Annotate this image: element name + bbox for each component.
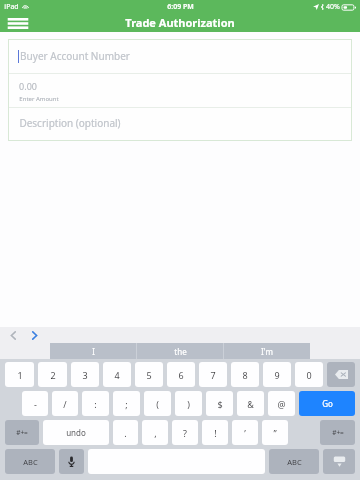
button[interactable]: Hide keyboard: [323, 449, 355, 474]
staticText: 9: [274, 369, 280, 381]
staticText: ;: [125, 398, 128, 410]
button[interactable]: Buyer Account Number: [8, 39, 352, 73]
button[interactable]: ’: [232, 420, 258, 445]
staticText: ): [187, 398, 190, 410]
button[interactable]: 1: [5, 362, 34, 387]
button[interactable]: 0.00: [8, 74, 352, 107]
staticText: /: [63, 398, 67, 410]
button[interactable]: undo: [43, 420, 109, 445]
staticText: Go: [322, 398, 333, 409]
staticText: ABC: [23, 457, 38, 467]
button[interactable]: 4: [103, 362, 131, 387]
button[interactable]: 5: [135, 362, 163, 387]
button[interactable]: Go: [299, 391, 355, 416]
button[interactable]: ABC letters: [269, 449, 319, 474]
staticText: :: [94, 398, 97, 410]
button[interactable]: 0: [295, 362, 323, 387]
staticText: ,: [154, 427, 157, 439]
staticText: 8: [242, 369, 248, 381]
staticText: ”: [273, 427, 277, 439]
button[interactable]: ABC letters: [5, 449, 55, 474]
button[interactable]: .: [113, 420, 138, 445]
staticText: !: [214, 427, 217, 439]
button[interactable]: I'm: [224, 343, 310, 359]
staticText: 4: [114, 369, 120, 381]
staticText: ABC: [287, 457, 302, 467]
staticText: 2: [50, 369, 56, 381]
staticText: 7: [210, 369, 216, 381]
button[interactable]: (: [144, 391, 171, 416]
staticText: I'm: [261, 346, 273, 357]
staticText: $: [217, 398, 223, 410]
button[interactable]: ,: [142, 420, 168, 445]
button[interactable]: Previous field: [6, 328, 20, 342]
staticText: -: [34, 398, 37, 410]
button[interactable]: @: [268, 391, 295, 416]
staticText: iPad: [4, 2, 19, 12]
button[interactable]: 6: [167, 362, 195, 387]
staticText: Buyer Account Number: [20, 49, 130, 63]
staticText: 6: [178, 369, 184, 381]
button[interactable]: ;: [113, 391, 140, 416]
button[interactable]: /: [52, 391, 78, 416]
button[interactable]: ”: [262, 420, 288, 445]
staticText: 6:09 PM: [167, 2, 194, 12]
button[interactable]: ): [175, 391, 202, 416]
button[interactable]: the: [137, 343, 223, 359]
button[interactable]: I: [50, 343, 136, 359]
button[interactable]: -: [22, 391, 48, 416]
staticText: Description (optional): [19, 116, 121, 130]
button[interactable]: Dictation: [59, 449, 84, 474]
button[interactable]: Symbols: [320, 420, 355, 445]
staticText: (: [156, 398, 159, 410]
button[interactable]: Next field: [27, 328, 41, 342]
button[interactable]: Delete: [327, 362, 355, 387]
staticText: I: [92, 346, 95, 357]
button[interactable]: 8: [231, 362, 259, 387]
staticText: #+=: [16, 428, 28, 437]
button[interactable]: ?: [172, 420, 198, 445]
button[interactable]: &: [237, 391, 264, 416]
button[interactable]: !: [202, 420, 228, 445]
staticText: &: [247, 398, 254, 410]
button[interactable]: 7: [199, 362, 227, 387]
staticText: Enter Amount: [19, 95, 59, 103]
staticText: @: [277, 398, 286, 410]
button[interactable]: 2: [38, 362, 67, 387]
button[interactable]: :: [82, 391, 109, 416]
staticText: 40%: [326, 2, 340, 12]
staticText: 0.00: [19, 80, 37, 92]
staticText: the: [174, 346, 187, 357]
button[interactable]: Symbols: [5, 420, 39, 445]
staticText: 1: [17, 369, 23, 381]
staticText: ’: [244, 427, 246, 439]
button[interactable]: Menu: [6, 15, 30, 31]
staticText: 0: [306, 369, 312, 381]
staticText: undo: [66, 427, 86, 438]
staticText: ?: [183, 427, 187, 439]
staticText: 3: [82, 369, 88, 381]
staticText: .: [124, 427, 127, 439]
button[interactable]: Description (optional): [8, 108, 352, 141]
staticText: #+=: [332, 428, 344, 437]
staticText: Trade Authorization: [125, 15, 235, 30]
button[interactable]: $: [206, 391, 233, 416]
staticText: 5: [146, 369, 152, 381]
button[interactable]: 3: [71, 362, 99, 387]
button[interactable]: 9: [263, 362, 291, 387]
